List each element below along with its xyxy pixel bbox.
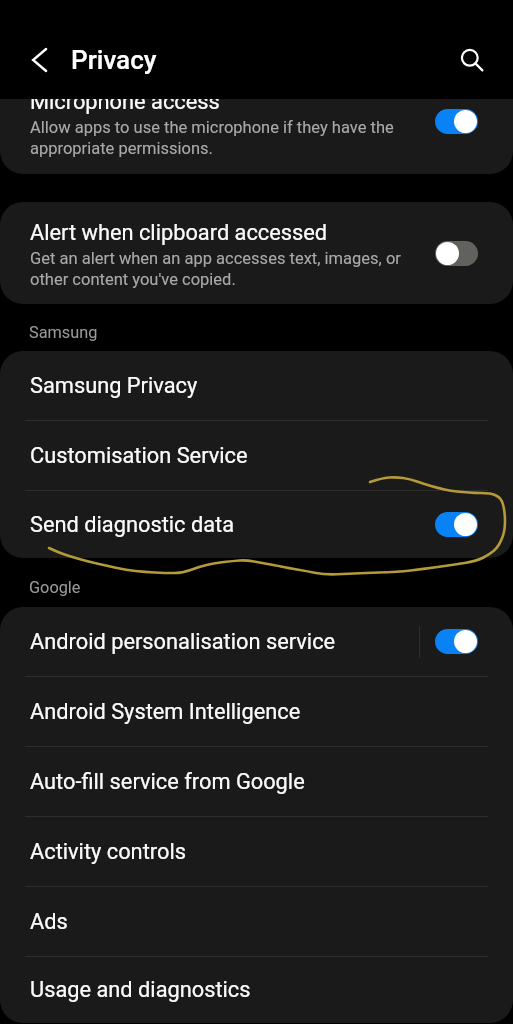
button[interactable]: Toggle on [435, 629, 478, 654]
button[interactable]: Android personalisation service [0, 607, 513, 676]
staticText: Usage and diagnostics [30, 977, 251, 1003]
button[interactable]: Toggle on [435, 109, 478, 134]
button[interactable]: Usage and diagnostics [0, 957, 513, 1023]
staticText: Samsung [29, 323, 98, 342]
button[interactable]: Microphone access [0, 99, 513, 174]
staticText: Samsung Privacy [30, 373, 198, 399]
button[interactable]: Send diagnostic data [0, 491, 513, 558]
staticText: Microphone access [30, 99, 220, 114]
button[interactable]: Ads [0, 887, 513, 956]
staticText: Android personalisation service [30, 629, 336, 655]
button[interactable]: Samsung Privacy [0, 351, 513, 420]
button[interactable]: Alert when clipboard accessed [0, 202, 513, 304]
staticText: Google [29, 578, 81, 597]
staticText: Ads [30, 909, 68, 935]
button[interactable]: Auto-fill service from Google [0, 747, 513, 816]
button[interactable]: Toggle off [435, 241, 478, 266]
staticText: Privacy [71, 45, 157, 75]
staticText: Customisation Service [30, 443, 248, 469]
staticText: Get an alert when an app accesses text, … [30, 247, 401, 289]
button[interactable]: Android System Intelligence [0, 677, 513, 746]
button[interactable]: Customisation Service [0, 421, 513, 490]
staticText: Android System Intelligence [30, 699, 301, 725]
staticText: Send diagnostic data [30, 512, 235, 538]
staticText: Activity controls [30, 839, 186, 865]
button[interactable]: Toggle on [435, 512, 478, 537]
staticText: Alert when clipboard accessed [30, 219, 328, 245]
button[interactable]: Back [13, 36, 61, 84]
staticText: Allow apps to use the microphone if they… [30, 116, 394, 158]
staticText: Auto-fill service from Google [30, 769, 305, 795]
button[interactable]: Activity controls [0, 817, 513, 886]
button[interactable]: Search [448, 36, 496, 84]
